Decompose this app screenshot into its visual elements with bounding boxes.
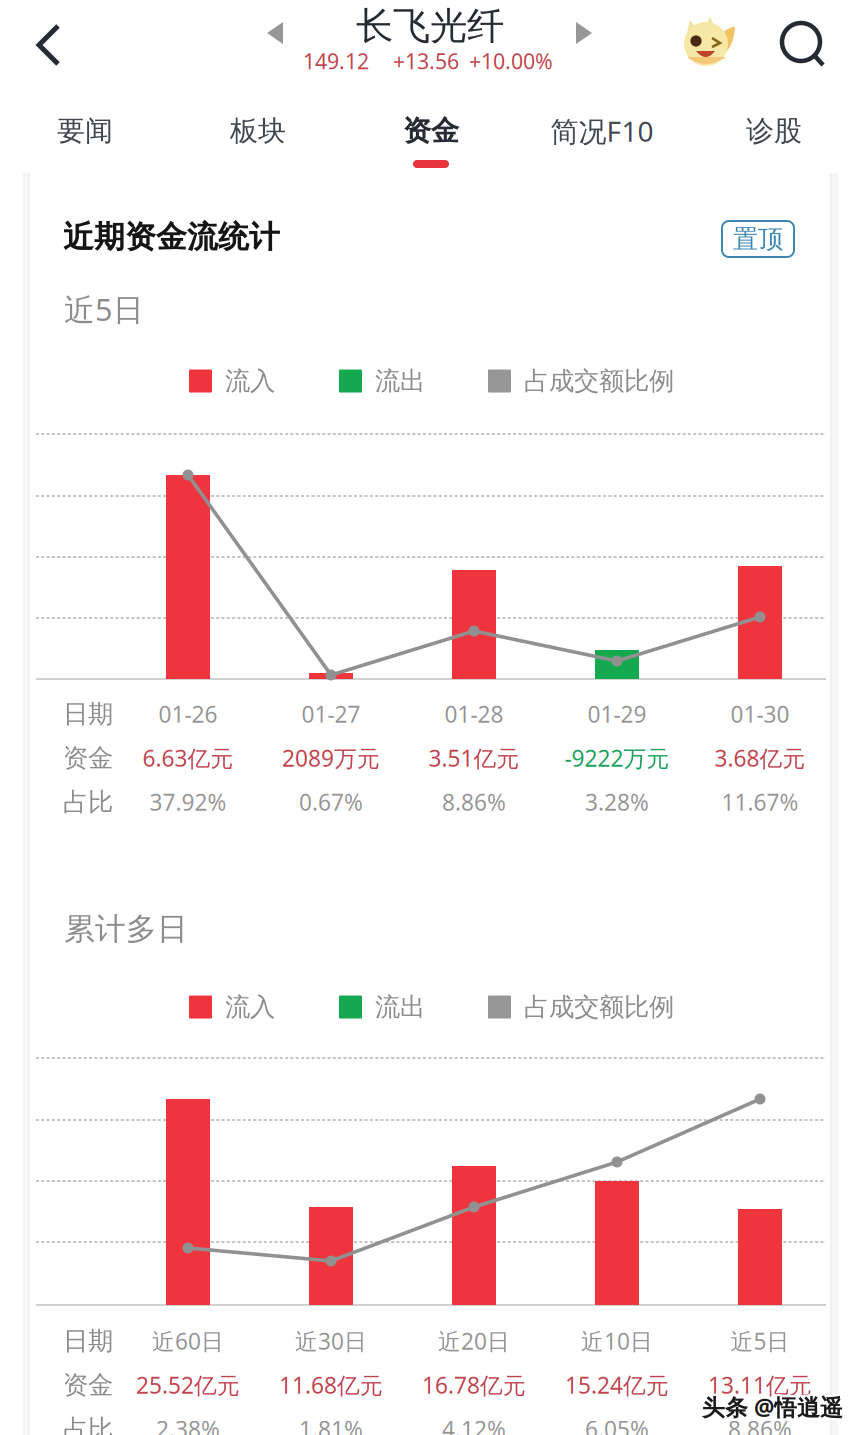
staticText: 11.67% xyxy=(721,787,798,817)
staticText: 占成交额比例 xyxy=(524,365,674,397)
staticText: 1.81% xyxy=(299,1414,363,1435)
staticText: 长飞光纤 xyxy=(356,2,504,49)
button[interactable]: Next stock xyxy=(560,18,604,62)
staticText: 37.92% xyxy=(149,787,226,817)
button[interactable]: 置顶 xyxy=(722,221,794,257)
staticText: 2089万元 xyxy=(282,743,380,773)
staticText: 近5日 xyxy=(64,288,144,330)
staticText: 6.63亿元 xyxy=(142,743,233,773)
button[interactable]: 简况F10 xyxy=(517,103,687,174)
staticText: 3.28% xyxy=(585,787,649,817)
staticText: 累计多日 xyxy=(64,910,188,948)
staticText: 0.67% xyxy=(299,787,363,817)
staticText: 16.78亿元 xyxy=(422,1370,526,1400)
button[interactable]: Previous stock xyxy=(256,18,300,62)
staticText: 头条 @悟逍遥 xyxy=(702,1394,843,1424)
staticText: 01-28 xyxy=(444,699,503,729)
button[interactable]: 资金 xyxy=(346,103,516,174)
staticText: 25.52亿元 xyxy=(136,1370,240,1400)
staticText: 01-26 xyxy=(158,699,217,729)
staticText: 头条 @悟逍遥 xyxy=(700,1392,841,1422)
staticText: 要闻 xyxy=(57,113,113,149)
staticText: 资金 xyxy=(63,1369,113,1401)
staticText: 4.12% xyxy=(442,1414,506,1435)
staticText: -9222万元 xyxy=(564,743,669,773)
staticText: 头条 @悟逍遥 xyxy=(702,1392,843,1422)
button[interactable]: 要闻 xyxy=(0,103,170,174)
button[interactable]: 诊股 xyxy=(689,103,859,174)
staticText: 01-30 xyxy=(730,699,789,729)
button[interactable]: Profile xyxy=(679,13,741,73)
staticText: 11.68亿元 xyxy=(279,1370,383,1400)
staticText: 头条 @悟逍遥 xyxy=(704,1392,845,1422)
staticText: 头条 @悟逍遥 xyxy=(704,1394,845,1424)
staticText: 3.68亿元 xyxy=(714,743,805,773)
staticText: 近期资金流统计 xyxy=(63,218,280,256)
staticText: 日期 xyxy=(63,698,113,730)
staticText: 资金 xyxy=(403,113,459,149)
staticText: 头条 @悟逍遥 xyxy=(702,1390,843,1420)
staticText: 日期 xyxy=(63,1325,113,1357)
staticText: 01-29 xyxy=(587,699,646,729)
staticText: 01-27 xyxy=(301,699,360,729)
staticText: 流入 xyxy=(225,991,275,1023)
staticText: 3.51亿元 xyxy=(428,743,519,773)
staticText: 简况F10 xyxy=(550,112,653,150)
staticText: 近20日 xyxy=(438,1326,510,1356)
staticText: 近10日 xyxy=(581,1326,653,1356)
staticText: 占比 xyxy=(63,786,113,818)
staticText: 板块 xyxy=(230,113,286,149)
staticText: 149.12 xyxy=(303,46,369,76)
staticText: 近30日 xyxy=(295,1326,367,1356)
button[interactable]: Back xyxy=(33,19,95,81)
staticText: 流出 xyxy=(375,991,425,1023)
staticText: 头条 @悟逍遥 xyxy=(700,1394,841,1424)
staticText: 置顶 xyxy=(733,223,783,255)
staticText: 15.24亿元 xyxy=(565,1370,669,1400)
staticText: 诊股 xyxy=(746,113,802,149)
staticText: +13.56 xyxy=(393,46,459,76)
staticText: 2.38% xyxy=(156,1414,220,1435)
button[interactable]: Search xyxy=(780,20,834,74)
staticText: 8.86% xyxy=(442,787,506,817)
staticText: 近60日 xyxy=(152,1326,224,1356)
staticText: 8.86% xyxy=(728,1414,792,1435)
staticText: 流入 xyxy=(225,365,275,397)
staticText: 6.05% xyxy=(585,1414,649,1435)
staticText: +10.00% xyxy=(469,46,553,76)
staticText: 头条 @悟逍遥 xyxy=(700,1390,841,1420)
staticText: 近5日 xyxy=(730,1326,789,1356)
staticText: 占成交额比例 xyxy=(524,991,674,1023)
button[interactable]: 板块 xyxy=(173,103,343,174)
staticText: 13.11亿元 xyxy=(708,1370,812,1400)
staticText: 资金 xyxy=(63,742,113,774)
staticText: 流出 xyxy=(375,365,425,397)
staticText: 头条 @悟逍遥 xyxy=(704,1390,845,1420)
staticText: 占比 xyxy=(63,1413,113,1435)
